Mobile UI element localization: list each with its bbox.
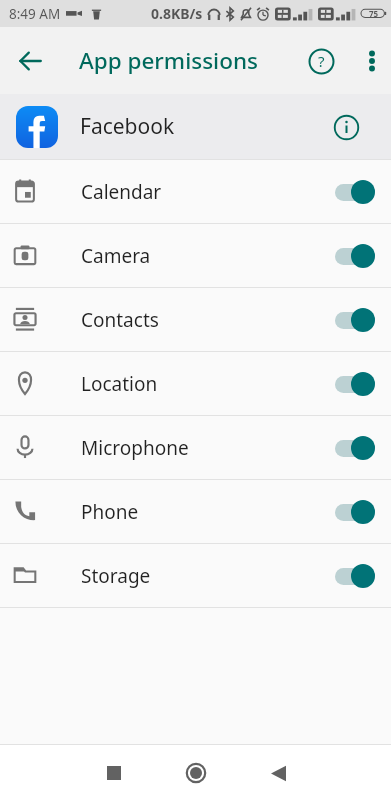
button[interactable]: Help xyxy=(297,37,345,85)
button[interactable]: Permission toggle xyxy=(334,497,378,527)
staticText: Calendar xyxy=(81,179,162,205)
button[interactable]: Permission toggle xyxy=(334,433,378,463)
staticText: 0.8KB/s xyxy=(151,4,203,23)
button[interactable]: Location xyxy=(0,352,391,415)
button[interactable]: Microphone xyxy=(0,416,391,479)
button[interactable]: Contacts xyxy=(0,288,391,351)
button[interactable]: Calendar xyxy=(0,160,391,223)
button[interactable]: Permission toggle xyxy=(334,305,378,335)
staticText: 75 xyxy=(369,8,379,19)
button[interactable]: Permission toggle xyxy=(334,369,378,399)
button[interactable]: Recent apps xyxy=(92,751,136,795)
button[interactable]: App info xyxy=(322,103,370,151)
button[interactable]: Back xyxy=(256,751,300,795)
staticText: Location xyxy=(81,371,158,397)
button[interactable]: Facebook xyxy=(0,94,391,159)
staticText: Storage xyxy=(81,563,151,589)
button[interactable]: Permission toggle xyxy=(334,241,378,271)
staticText: 8:49 AM xyxy=(9,5,61,23)
button[interactable]: Back xyxy=(0,27,60,94)
button[interactable]: Home xyxy=(174,751,218,795)
button[interactable]: Permission toggle xyxy=(334,561,378,591)
staticText: Phone xyxy=(81,499,139,525)
button[interactable]: More options xyxy=(355,44,389,78)
staticText: Facebook xyxy=(80,112,175,141)
button[interactable]: Phone xyxy=(0,480,391,543)
button[interactable]: Camera xyxy=(0,224,391,287)
button[interactable]: Storage xyxy=(0,544,391,607)
staticText: Microphone xyxy=(81,435,189,461)
staticText: Contacts xyxy=(81,307,159,333)
button[interactable]: Permission toggle xyxy=(334,177,378,207)
staticText: App permissions xyxy=(79,45,258,76)
staticText: Camera xyxy=(81,243,151,269)
staticText: ? xyxy=(318,51,325,71)
